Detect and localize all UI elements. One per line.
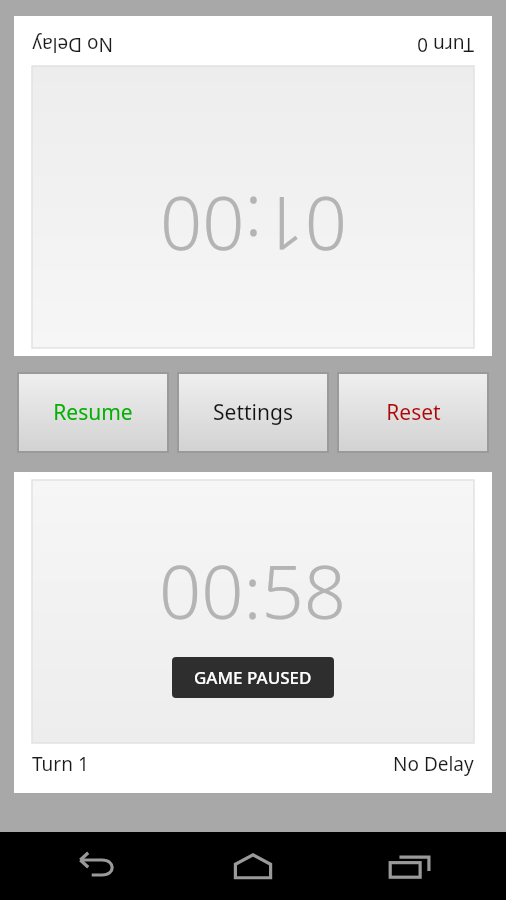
staticText: 01:00 [159,175,347,276]
button[interactable]: Resume [18,373,168,452]
staticText: Turn 0 [417,32,474,58]
button[interactable]: 01:00 [14,16,492,356]
button[interactable]: Reset [338,373,488,452]
staticText: Reset [386,398,441,427]
staticText: Settings [213,398,293,427]
staticText: No Delay [32,32,113,58]
button[interactable]: Back [37,832,157,900]
staticText: No Delay [393,751,474,777]
button[interactable]: Home [193,832,313,900]
button[interactable]: 00:58 [14,472,492,793]
staticText: Resume [53,398,133,427]
staticText: Turn 1 [32,751,89,777]
button[interactable]: Recent apps [350,832,470,900]
staticText: GAME PAUSED [194,666,312,689]
button[interactable]: Settings [178,373,328,452]
staticText: 00:58 [159,540,347,641]
